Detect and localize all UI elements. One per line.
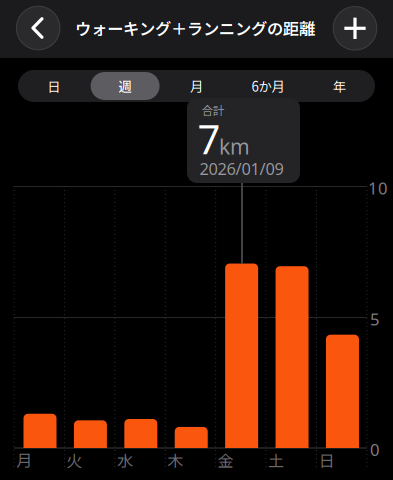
button[interactable]: 週 — [91, 70, 160, 102]
staticText: 2026/01/09 — [199, 157, 283, 180]
staticText: 火 — [67, 448, 83, 471]
staticText: 金 — [218, 448, 234, 471]
button[interactable]: 年 — [305, 70, 374, 102]
staticText: 7 — [197, 111, 220, 166]
button[interactable] — [333, 7, 377, 50]
button[interactable]: 日 — [19, 70, 88, 102]
staticText: 年 — [333, 76, 346, 96]
button[interactable]: 月 — [162, 70, 231, 102]
staticText: 10 — [368, 177, 388, 199]
staticText: 月 — [16, 448, 32, 471]
staticText: 月 — [190, 76, 203, 96]
staticText: 週 — [119, 76, 132, 96]
staticText: 6か月 — [251, 76, 284, 96]
staticText: ウォーキング＋ランニングの距離 — [75, 16, 315, 40]
staticText: 日 — [47, 76, 60, 96]
staticText: 合計 — [202, 102, 224, 118]
button[interactable] — [16, 6, 60, 50]
staticText: km — [219, 132, 250, 161]
staticText: 5 — [370, 308, 380, 330]
staticText: 木 — [167, 448, 183, 471]
staticText: 0 — [370, 438, 380, 461]
staticText: 日 — [319, 448, 335, 471]
staticText: 水 — [117, 448, 133, 471]
staticText: 土 — [268, 448, 284, 471]
button[interactable]: 6か月 — [233, 70, 302, 102]
